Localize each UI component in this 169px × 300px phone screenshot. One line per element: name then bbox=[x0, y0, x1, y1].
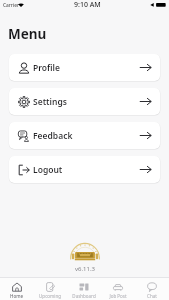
staticText: Carrier bbox=[3, 2, 19, 9]
staticText: Feedback bbox=[33, 130, 73, 142]
staticText: 9:10 AM bbox=[74, 0, 101, 10]
staticText: Profile bbox=[33, 62, 60, 74]
button[interactable]: Upcoming bbox=[33, 278, 67, 300]
button[interactable]: Home bbox=[0, 278, 33, 300]
button[interactable]: Job Post bbox=[101, 278, 135, 300]
staticText: Dashboard bbox=[72, 293, 96, 299]
button[interactable]: Settings bbox=[9, 88, 160, 115]
button[interactable]: Profile bbox=[9, 54, 160, 81]
staticText: Chat bbox=[147, 293, 157, 299]
staticText: Upcoming bbox=[39, 293, 61, 299]
staticText: Home bbox=[10, 293, 23, 299]
button[interactable]: Feedback bbox=[9, 122, 160, 149]
staticText: Logout bbox=[33, 164, 63, 176]
staticText: Job Post bbox=[109, 293, 127, 299]
button[interactable]: Dashboard bbox=[67, 278, 101, 300]
staticText: Menu bbox=[8, 25, 47, 43]
button[interactable]: Logout bbox=[9, 156, 160, 183]
button[interactable]: Chat bbox=[135, 278, 169, 300]
staticText: Settings bbox=[33, 96, 67, 108]
staticText: v6.11.3 bbox=[75, 265, 95, 273]
